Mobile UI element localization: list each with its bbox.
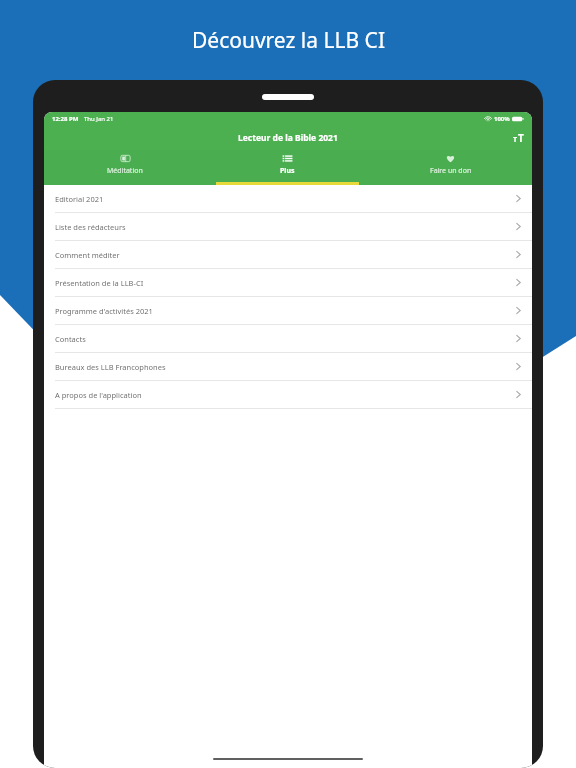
staticText: Contacts <box>55 334 86 344</box>
button[interactable]: Text size <box>513 131 524 145</box>
button[interactable]: Faire un don <box>369 150 532 185</box>
staticText: A propos de l'application <box>55 390 142 400</box>
staticText: Découvrez la LLB CI <box>192 26 385 55</box>
staticText: Thu Jan 21 <box>84 115 114 123</box>
staticText: Méditation <box>107 166 143 176</box>
staticText: 12:28 PM <box>52 115 79 123</box>
staticText: 100% <box>494 115 510 123</box>
staticText: T <box>518 131 524 145</box>
button[interactable]: Plus <box>206 150 369 185</box>
button[interactable]: Editorial 2021 <box>44 185 532 212</box>
button[interactable]: Méditation <box>44 150 206 185</box>
button[interactable]: Contacts <box>44 325 532 352</box>
button[interactable]: Bureaux des LLB Francophones <box>44 353 532 380</box>
staticText: Lecteur de la Bible 2021 <box>238 132 338 144</box>
staticText: Plus <box>280 166 295 176</box>
button[interactable]: Comment méditer <box>44 241 532 268</box>
staticText: Faire un don <box>430 166 472 176</box>
staticText: Programme d'activités 2021 <box>55 306 153 316</box>
staticText: Editorial 2021 <box>55 194 104 204</box>
staticText: T <box>513 135 518 145</box>
staticText: Présentation de la LLB-CI <box>55 278 144 288</box>
staticText: Bureaux des LLB Francophones <box>55 362 166 372</box>
button[interactable]: A propos de l'application <box>44 381 532 408</box>
button[interactable]: Programme d'activités 2021 <box>44 297 532 324</box>
staticText: Comment méditer <box>55 250 120 260</box>
button[interactable]: Présentation de la LLB-CI <box>44 269 532 296</box>
button[interactable]: Liste des rédacteurs <box>44 213 532 240</box>
staticText: Liste des rédacteurs <box>55 222 126 232</box>
